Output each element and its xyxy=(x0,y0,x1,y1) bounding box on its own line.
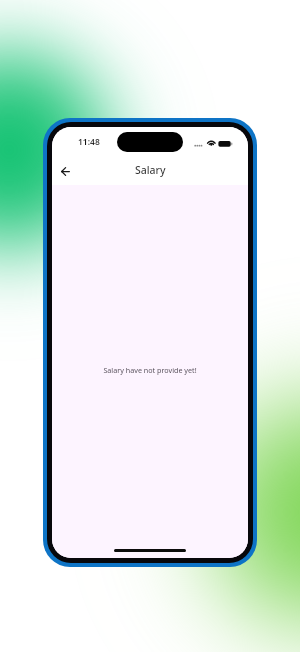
staticText: Salary have not provide yet! xyxy=(103,365,197,375)
staticText: Salary xyxy=(135,163,166,177)
button[interactable]: Back xyxy=(54,161,76,183)
staticText: 11:48 xyxy=(78,136,100,148)
